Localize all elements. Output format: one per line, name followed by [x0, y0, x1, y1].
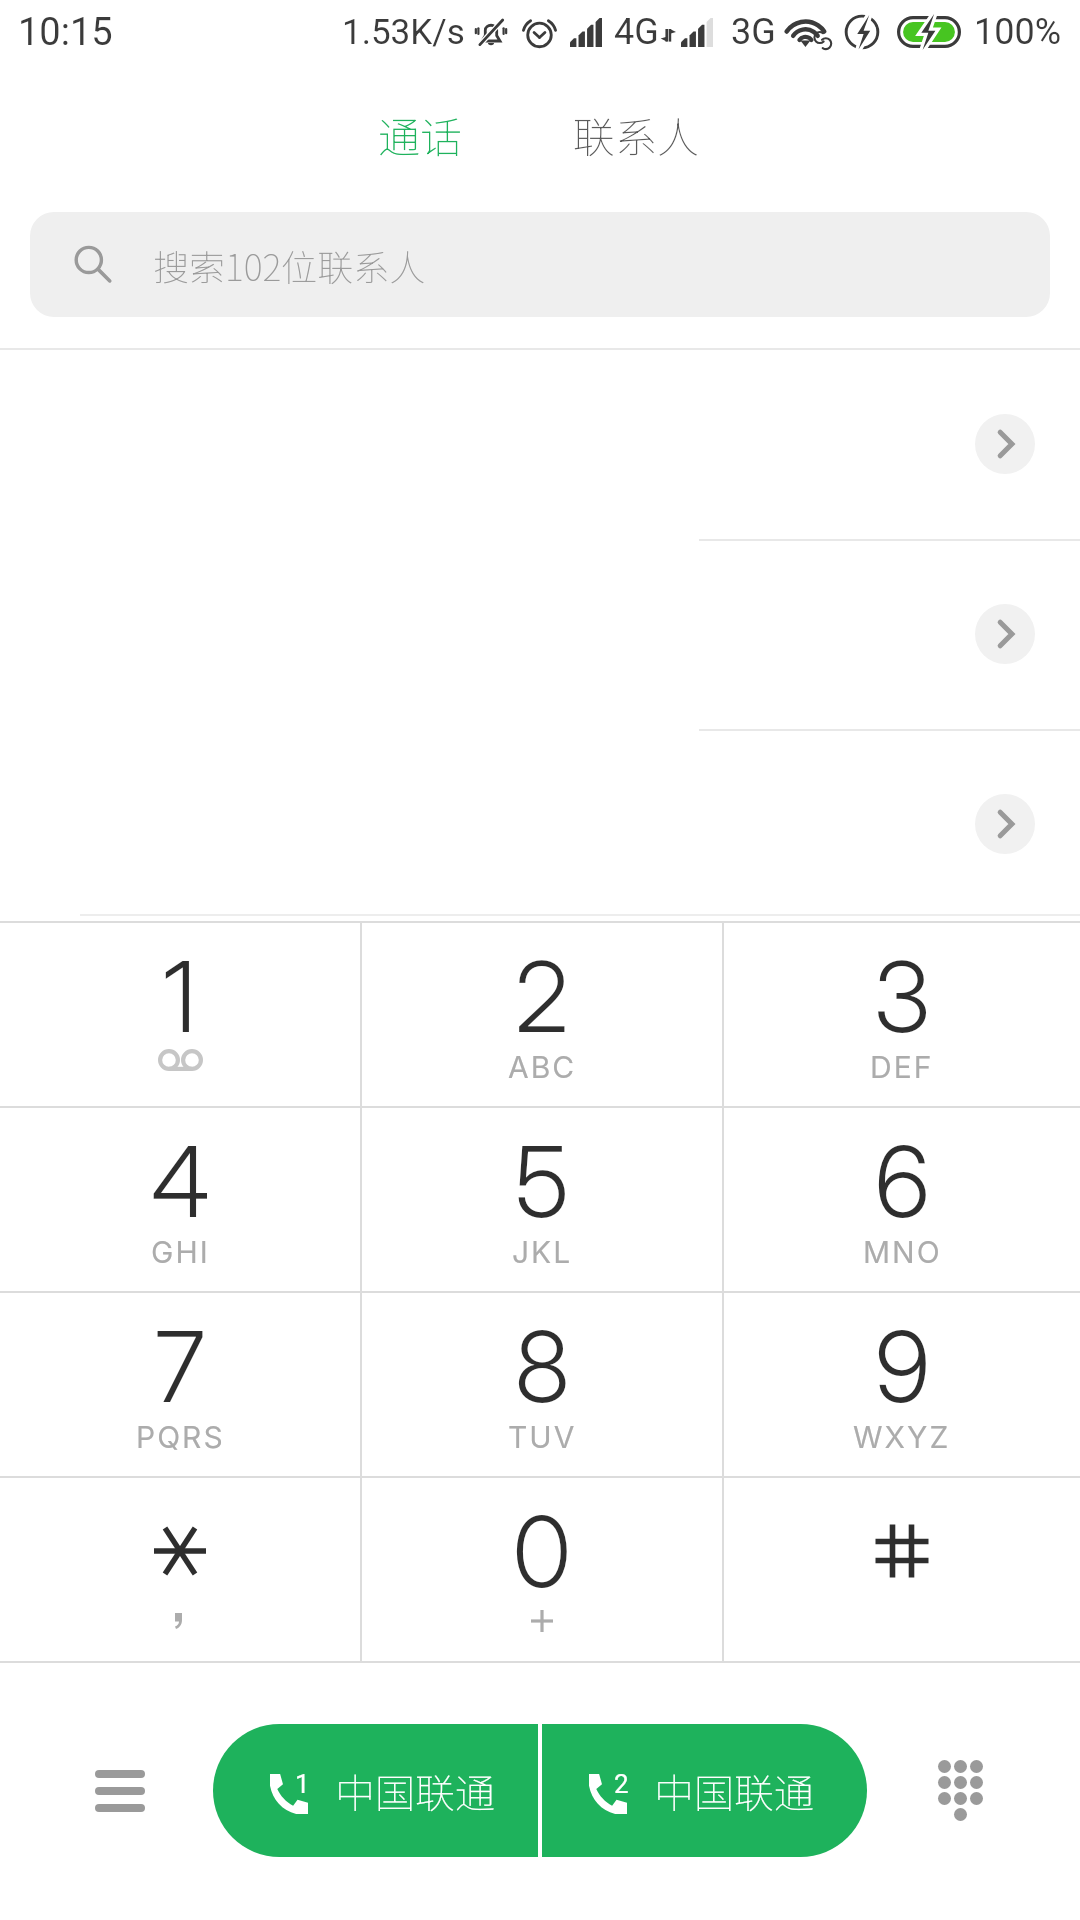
button[interactable]: 8 — [362, 1293, 722, 1476]
button[interactable]: 1 — [0, 923, 360, 1106]
staticText: ABC — [508, 1049, 577, 1085]
staticText: 1 — [163, 938, 197, 1055]
staticText: 10:15 — [18, 10, 113, 55]
button[interactable]: 5 — [362, 1108, 722, 1291]
button[interactable]: 6 — [724, 1108, 1080, 1291]
button[interactable]: 2 — [362, 923, 722, 1106]
button[interactable]: 2 — [542, 1724, 867, 1857]
staticText: 3 — [874, 938, 930, 1055]
staticText: 100% — [974, 11, 1062, 53]
staticText: 1 — [295, 1769, 310, 1799]
staticText: 中国联通 — [654, 1762, 814, 1820]
staticText: 4 — [151, 1123, 210, 1240]
button[interactable]: Dialpad — [915, 1745, 1005, 1835]
staticText: 1.53K/s — [342, 12, 465, 53]
staticText: PQRS — [136, 1419, 225, 1455]
staticText: 4G — [614, 11, 659, 53]
staticText: MNO — [863, 1234, 942, 1270]
staticText: 2 — [614, 1769, 629, 1799]
staticText: 9 — [875, 1308, 930, 1425]
button[interactable]: 3 — [724, 923, 1080, 1106]
button[interactable]: 7 — [0, 1293, 360, 1476]
button[interactable]: 1 — [213, 1724, 538, 1857]
staticText: DEF — [870, 1049, 934, 1085]
staticText: GHI — [151, 1234, 210, 1270]
button[interactable]: Open call details — [975, 794, 1035, 854]
button[interactable]: Open call details — [975, 604, 1035, 664]
staticText: 3G — [731, 11, 776, 53]
staticText: 搜索102位联系人 — [153, 239, 426, 291]
button[interactable] — [724, 1478, 1080, 1661]
staticText: 0 — [513, 1493, 571, 1610]
staticText: JKL — [512, 1234, 573, 1270]
button[interactable]: 联系人 — [557, 88, 716, 181]
staticText: 通话 — [378, 104, 463, 165]
button[interactable] — [0, 1478, 360, 1661]
staticText: 8 — [515, 1308, 570, 1425]
staticText: 中国联通 — [335, 1762, 495, 1820]
button[interactable]: Open call details — [0, 349, 1080, 539]
button[interactable]: Open call details — [0, 539, 1080, 729]
button[interactable]: 搜索102位联系人 — [30, 212, 1050, 317]
staticText: 联系人 — [573, 104, 700, 165]
staticText: 2 — [515, 938, 569, 1055]
button[interactable]: 4 — [0, 1108, 360, 1291]
staticText: 5 — [515, 1123, 569, 1240]
button[interactable]: 9 — [724, 1293, 1080, 1476]
staticText: TUV — [508, 1419, 577, 1455]
button[interactable]: More options — [75, 1746, 165, 1836]
button[interactable]: Open call details — [0, 729, 1080, 919]
staticText: 6 — [875, 1123, 930, 1240]
button[interactable]: 0 — [362, 1478, 722, 1661]
button[interactable]: Open call details — [975, 414, 1035, 474]
staticText: 7 — [155, 1308, 206, 1425]
staticText: WXYZ — [853, 1419, 951, 1455]
button[interactable]: 通话 — [362, 88, 479, 181]
